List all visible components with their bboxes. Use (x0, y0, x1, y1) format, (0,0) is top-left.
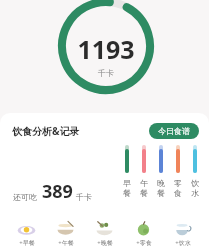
staticText: 千卡 (98, 68, 114, 78)
staticText: 1193 (77, 32, 135, 66)
staticText: 今日食谱 (158, 126, 190, 136)
staticText: 饮食分析&记录 (12, 124, 80, 138)
other: +饮水 (172, 218, 193, 239)
other: +早餐 (16, 218, 37, 239)
button[interactable]: +午餐 (53, 217, 78, 248)
staticText: 午 (140, 178, 148, 188)
button[interactable]: 今日食谱 (149, 123, 199, 139)
other: +晚餐 (94, 218, 115, 239)
staticText: +晚餐 (97, 239, 113, 247)
staticText: 水 (191, 188, 199, 198)
staticText: +饮水 (175, 239, 191, 247)
staticText: 餐 (123, 188, 131, 198)
staticText: 食 (174, 188, 182, 198)
button[interactable]: +早餐 (14, 217, 39, 248)
button[interactable]: 零 (169, 145, 186, 198)
button[interactable]: +零食 (131, 217, 156, 248)
button[interactable]: +晚餐 (92, 217, 117, 248)
staticText: 389 (42, 179, 73, 204)
staticText: 餐 (140, 188, 148, 198)
other: +零食 (133, 218, 154, 239)
button[interactable]: +饮水 (170, 217, 195, 248)
staticText: 饮 (191, 178, 199, 188)
staticText: 餐 (157, 188, 165, 198)
staticText: 早 (123, 178, 131, 188)
button[interactable]: 晚 (152, 145, 169, 198)
staticText: +零食 (136, 239, 152, 247)
staticText: 千卡 (76, 192, 92, 202)
staticText: +早餐 (19, 239, 35, 247)
button[interactable]: 早 (118, 145, 135, 198)
staticText: 晚 (157, 178, 165, 188)
other: +午餐 (55, 218, 76, 239)
staticText: +午餐 (58, 239, 74, 247)
button[interactable]: Calorie progress ring (58, 0, 154, 94)
button[interactable]: 午 (135, 145, 152, 198)
staticText: 还可吃 (13, 192, 37, 202)
staticText: 零 (174, 178, 182, 188)
button[interactable]: 饮 (186, 145, 203, 198)
